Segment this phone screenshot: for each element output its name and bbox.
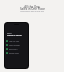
staticText: Track every deal in one tap (20, 10, 44, 13)
staticText: Deals (7, 32, 12, 34)
button[interactable]: Sony Headset (6, 43, 28, 47)
staticText: Today's picks (7, 34, 22, 37)
staticText: Nike Air Max (9, 40, 20, 42)
button[interactable]: Nike Air Max (6, 39, 28, 43)
button[interactable]: Kindle Oasis (6, 51, 28, 55)
button[interactable]: Echo Dot 5 (6, 47, 28, 51)
staticText: Sales in One Place (20, 7, 45, 11)
staticText: All the One (24, 5, 40, 9)
staticText: Echo Dot 5 (9, 48, 18, 50)
staticText: Kindle Oasis (9, 52, 19, 54)
staticText: Sony Headset (9, 44, 20, 46)
